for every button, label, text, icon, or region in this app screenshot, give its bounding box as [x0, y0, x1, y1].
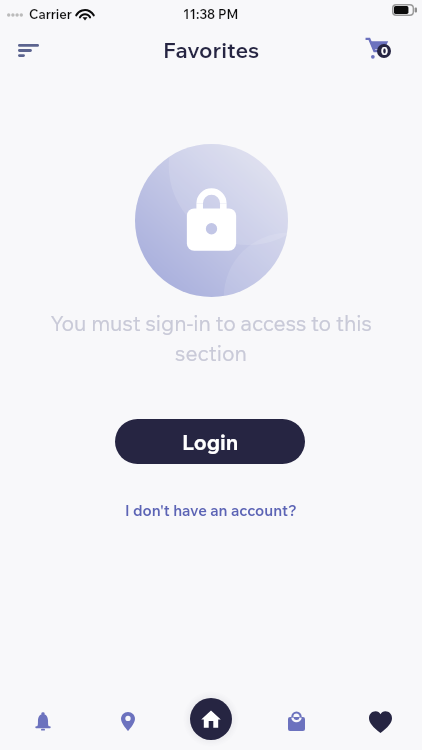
- button[interactable]: I don't have an account?: [115, 497, 307, 524]
- staticText: 0: [381, 44, 388, 58]
- staticText: Login: [182, 429, 239, 455]
- button[interactable]: Shop: [254, 692, 338, 750]
- button[interactable]: Location: [85, 692, 170, 750]
- button[interactable]: Favorites: [338, 692, 422, 750]
- staticText: I don't have an account?: [125, 501, 297, 520]
- button[interactable]: Notifications: [0, 692, 85, 750]
- staticText: You must sign-in to access to this secti…: [44, 310, 378, 366]
- staticText: Carrier: [29, 6, 72, 22]
- button[interactable]: Login: [115, 419, 305, 464]
- button[interactable]: Menu: [6, 28, 50, 72]
- button[interactable]: Cart: [364, 28, 408, 72]
- staticText: 11:38 PM: [183, 6, 239, 22]
- button[interactable]: Home: [190, 698, 232, 740]
- staticText: Favorites: [163, 36, 260, 64]
